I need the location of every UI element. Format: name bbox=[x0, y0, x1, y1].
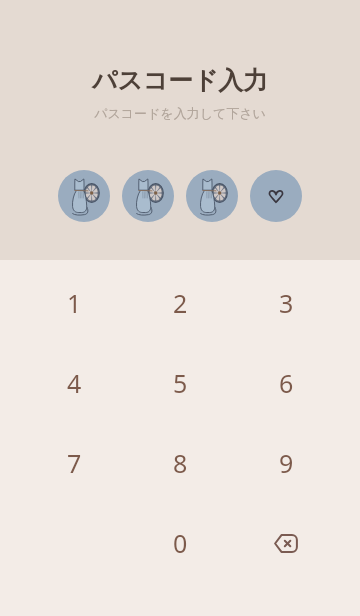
button[interactable]: 1 bbox=[21, 263, 127, 343]
staticText: パスコード入力 bbox=[92, 65, 268, 96]
staticText: パスコードを入力して下さい bbox=[94, 105, 266, 121]
button[interactable]: 7 bbox=[21, 423, 127, 503]
staticText: 2 bbox=[173, 286, 188, 320]
button[interactable]: 9 bbox=[233, 423, 339, 503]
other: Delete bbox=[274, 534, 298, 553]
staticText: 7 bbox=[67, 446, 82, 480]
button[interactable]: 8 bbox=[127, 423, 233, 503]
button[interactable]: 2 bbox=[127, 263, 233, 343]
staticText: 1 bbox=[67, 286, 82, 320]
staticText: 8 bbox=[173, 446, 188, 480]
staticText: 0 bbox=[173, 526, 188, 560]
button[interactable]: 3 bbox=[233, 263, 339, 343]
button[interactable]: Delete bbox=[233, 503, 339, 583]
staticText: 3 bbox=[279, 286, 294, 320]
staticText: 5 bbox=[173, 366, 188, 400]
button[interactable]: 4 bbox=[21, 343, 127, 423]
staticText: 4 bbox=[67, 366, 82, 400]
button[interactable]: 0 bbox=[127, 503, 233, 583]
button[interactable]: 5 bbox=[127, 343, 233, 423]
staticText: 6 bbox=[279, 366, 294, 400]
staticText: 9 bbox=[279, 446, 294, 480]
button[interactable]: 6 bbox=[233, 343, 339, 423]
